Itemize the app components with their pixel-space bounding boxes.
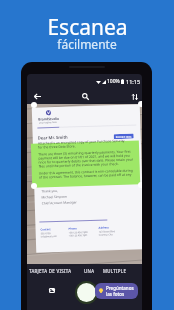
button[interactable]: UNA — [83, 265, 96, 277]
button[interactable]: Pregúntanos — [95, 283, 138, 299]
staticText: Thank you, — [41, 189, 58, 193]
staticText: Address — [98, 225, 110, 230]
staticText: payment will be due on 01/01 of 2021, an… — [38, 152, 136, 160]
staticText: UNA — [84, 268, 95, 274]
staticText: 100% — [107, 78, 120, 85]
button[interactable]: TARJETA DE VISITA — [28, 265, 73, 277]
staticText: Under this agreement, this contract is n… — [39, 167, 137, 175]
staticText: of the contract. The balance, however, c… — [39, 171, 137, 179]
staticText: Attached is an encrypted copy of your Pu… — [38, 137, 136, 145]
staticText: Contact — [40, 227, 52, 231]
button[interactable]: Search — [79, 90, 92, 103]
staticText: MULTIPLE — [103, 268, 127, 274]
staticText: Michael Simpson — [41, 195, 68, 199]
button[interactable]: Capture — [75, 281, 98, 304]
staticText: 11:15 — [126, 78, 141, 85]
staticText: Escanea — [47, 13, 128, 42]
staticText: info@mail.com — [41, 235, 58, 238]
staticText: +00 123 456 7891 — [69, 234, 88, 238]
staticText: Chief Account Manager — [42, 200, 77, 205]
staticText: your tagline here — [39, 121, 57, 124]
staticText: Dear Mr. Smith — [38, 135, 69, 142]
staticText: nnce for to quarterly debits over that d… — [38, 157, 133, 164]
staticText: TARJETA DE VISITA — [29, 268, 72, 274]
button[interactable]: MULTIPLE — [102, 265, 128, 277]
staticText: Phone — [68, 226, 78, 231]
staticText: There are three (3) remaining quarterly … — [38, 148, 136, 156]
staticText: 123 Street Blvd — [99, 230, 116, 234]
staticText: fácilmente — [57, 36, 117, 52]
button[interactable]: Back — [31, 90, 44, 103]
staticText: files until the portion of the invoice w… — [38, 161, 120, 167]
button[interactable]: Sort — [128, 90, 141, 103]
staticText: 555-0199 — [41, 232, 51, 235]
staticText: for the three Data Store. — [38, 143, 76, 149]
staticText: INVOICE 0034 — [116, 135, 132, 138]
staticText: +00 123 456 7890 — [69, 231, 88, 235]
staticText: BrandStudio — [38, 116, 59, 122]
staticText: Country, City — [99, 233, 113, 237]
staticText: las fotos — [106, 291, 125, 297]
staticText: Pregúntanos — [106, 285, 134, 291]
button[interactable]: Gallery — [46, 284, 58, 296]
